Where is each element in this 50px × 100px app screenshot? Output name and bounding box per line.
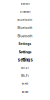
staticText: Wi-Fi <box>21 66 29 70</box>
staticText: Wi-Fi <box>21 74 29 78</box>
staticText: Bluetooth <box>17 18 32 22</box>
staticText: 9:41 <box>22 82 28 85</box>
staticText: Bluetooth <box>20 3 29 5</box>
staticText: Settings <box>17 58 32 62</box>
staticText: Bluetooth <box>17 34 32 38</box>
staticText: 9:41 <box>22 90 28 94</box>
staticText: Settings <box>18 50 31 54</box>
staticText: Bluetooth <box>17 26 32 30</box>
staticText: Bluetooth <box>20 10 30 13</box>
staticText: Settings <box>18 42 31 46</box>
